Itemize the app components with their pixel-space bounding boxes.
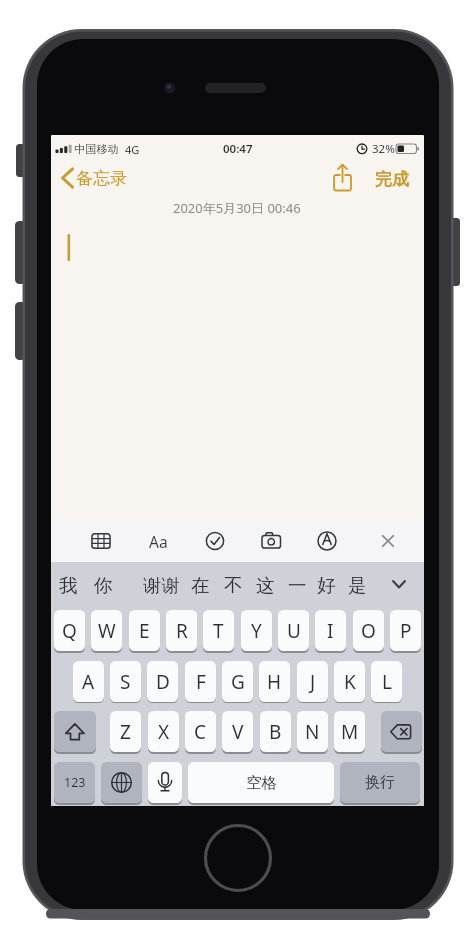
button[interactable]: 备忘录 <box>76 163 156 193</box>
staticText: 空格 <box>246 773 277 793</box>
staticText: F <box>196 669 206 695</box>
button[interactable]: 一 <box>227 570 367 600</box>
button[interactable]: Z <box>110 711 141 752</box>
staticText: 123 <box>64 774 86 791</box>
staticText: 中国移动 <box>74 142 119 156</box>
staticText: 好 <box>317 574 336 597</box>
button[interactable]: U <box>278 610 309 651</box>
button[interactable]: W <box>91 610 122 651</box>
button[interactable]: 这 <box>195 570 335 600</box>
staticText: S <box>120 669 131 695</box>
button[interactable]: D <box>147 661 178 702</box>
staticText: 一 <box>288 574 307 597</box>
staticText: L <box>382 669 392 695</box>
staticText: G <box>231 669 245 695</box>
button[interactable]: X <box>148 711 179 752</box>
staticText: P <box>400 618 412 644</box>
staticText: X <box>158 719 170 745</box>
button[interactable]: O <box>353 610 384 651</box>
staticText: Y <box>251 618 262 644</box>
button[interactable]: V <box>222 711 253 752</box>
staticText: M <box>341 719 359 745</box>
staticText: T <box>213 618 224 644</box>
staticText: 4G <box>125 142 140 157</box>
button[interactable]: Q <box>54 610 85 651</box>
button[interactable]: T <box>203 610 234 651</box>
button[interactable]: 换行 <box>340 762 420 803</box>
button[interactable]: A <box>73 661 104 702</box>
button[interactable]: 123 <box>54 762 95 803</box>
staticText: D <box>156 669 170 695</box>
button[interactable] <box>381 711 422 752</box>
button[interactable]: H <box>259 661 290 702</box>
button[interactable] <box>385 570 413 598</box>
button[interactable] <box>148 762 182 803</box>
button[interactable] <box>201 527 229 555</box>
button[interactable]: G <box>222 661 253 702</box>
staticText: 是 <box>348 574 367 597</box>
button[interactable] <box>374 527 402 555</box>
staticText: A <box>82 669 95 695</box>
staticText: 你 <box>94 574 113 597</box>
button[interactable]: S <box>110 661 141 702</box>
staticText: K <box>344 669 356 695</box>
button[interactable]: L <box>371 661 402 702</box>
staticText: W <box>98 618 116 644</box>
button[interactable]: F <box>185 661 216 702</box>
staticText: E <box>139 618 150 644</box>
staticText: Aa <box>149 531 168 552</box>
button[interactable]: Y <box>241 610 272 651</box>
staticText: O <box>361 618 376 644</box>
staticText: Q <box>62 618 77 644</box>
staticText: 完成 <box>375 169 409 190</box>
button[interactable]: 谢谢 <box>91 570 231 600</box>
button[interactable] <box>54 711 96 752</box>
button[interactable]: 空格 <box>188 762 334 803</box>
button[interactable]: B <box>260 711 291 752</box>
staticText: 不 <box>224 574 243 597</box>
staticText: 在 <box>191 574 210 597</box>
button[interactable] <box>257 527 285 555</box>
staticText: 我 <box>59 574 78 597</box>
button[interactable]: 完成 <box>322 164 424 194</box>
button[interactable]: 好 <box>256 570 396 600</box>
staticText: 2020年5月30日 00:46 <box>173 199 301 217</box>
button[interactable]: 你 <box>51 570 173 600</box>
staticText: 备忘录 <box>76 168 127 189</box>
button[interactable]: 是 <box>287 570 424 600</box>
button[interactable]: E <box>129 610 160 651</box>
button[interactable]: P <box>390 610 421 651</box>
staticText: R <box>176 618 188 644</box>
staticText: I <box>327 618 334 644</box>
button[interactable]: R <box>166 610 197 651</box>
button[interactable]: 在 <box>130 570 270 600</box>
staticText: U <box>287 618 301 644</box>
button[interactable] <box>101 762 142 803</box>
staticText: C <box>194 719 207 745</box>
staticText: 换行 <box>365 773 395 792</box>
staticText: B <box>269 719 282 745</box>
button[interactable] <box>313 527 341 555</box>
button[interactable]: J <box>297 661 328 702</box>
button[interactable]: N <box>297 711 328 752</box>
button[interactable]: K <box>334 661 365 702</box>
staticText: J <box>310 669 316 695</box>
staticText: N <box>305 719 320 745</box>
staticText: 谢谢 <box>143 574 180 597</box>
staticText: 00:47 <box>223 141 253 157</box>
button[interactable]: M <box>334 711 365 752</box>
button[interactable]: I <box>315 610 346 651</box>
button[interactable]: 我 <box>51 570 138 600</box>
button[interactable]: C <box>185 711 216 752</box>
button[interactable]: Aa <box>88 526 228 556</box>
staticText: Z <box>120 719 131 745</box>
button[interactable] <box>329 162 357 194</box>
staticText: 这 <box>256 574 275 597</box>
staticText: H <box>267 669 282 695</box>
staticText: 32% <box>372 141 395 157</box>
button[interactable]: 不 <box>163 570 303 600</box>
staticText: V <box>232 719 244 745</box>
button[interactable] <box>87 527 115 555</box>
